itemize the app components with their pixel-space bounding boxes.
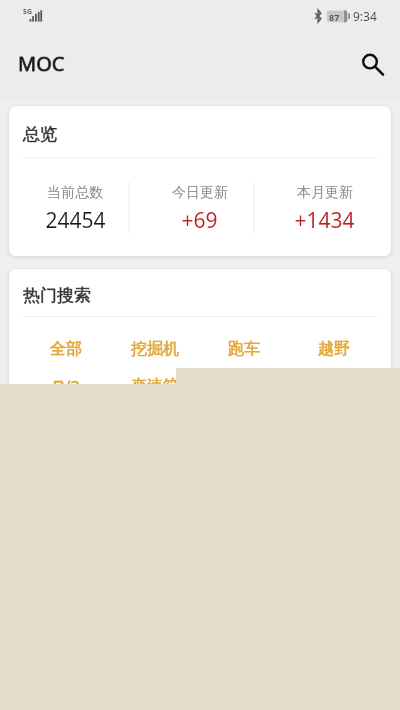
- staticText: 挖掘机: [131, 339, 179, 359]
- staticText: 本月更新: [297, 184, 353, 202]
- staticText: MOC: [18, 50, 65, 77]
- staticText: FV3: [52, 376, 80, 398]
- staticText: MOC: [18, 50, 65, 77]
- staticText: 总览: [23, 124, 57, 145]
- staticText: FV3: [52, 376, 80, 398]
- button[interactable]: 全部: [21, 339, 110, 376]
- button[interactable]: FV3: [21, 376, 110, 413]
- staticText: +69: [181, 206, 218, 235]
- staticText: 24454: [45, 206, 106, 235]
- staticText: 5G: [23, 7, 33, 17]
- button[interactable]: 本月更新: [262, 158, 387, 256]
- staticText: 9:34: [353, 8, 377, 24]
- button[interactable]: 挖掘机: [110, 339, 199, 376]
- staticText: 跑车: [228, 339, 260, 359]
- staticText: 热门搜索: [23, 285, 91, 306]
- button[interactable]: 变速箱: [110, 376, 199, 413]
- staticText: 变速箱: [131, 376, 179, 396]
- button[interactable]: 今日更新: [137, 158, 262, 256]
- staticText: 跑车: [228, 339, 260, 359]
- staticText: 热门搜索: [23, 285, 91, 306]
- staticText: +1434: [294, 206, 355, 235]
- staticText: 全部: [50, 339, 82, 359]
- staticText: 当前总数: [47, 184, 103, 202]
- staticText: 全部: [50, 339, 82, 359]
- button[interactable]: 当前总数: [13, 158, 137, 256]
- staticText: 越野: [318, 339, 350, 359]
- staticText: 挖掘机: [131, 339, 179, 359]
- button[interactable]: Search: [351, 43, 395, 87]
- staticText: 越野: [318, 339, 350, 359]
- button[interactable]: 越野: [289, 339, 379, 376]
- staticText: 87: [329, 11, 340, 23]
- button[interactable]: 跑车: [199, 339, 289, 376]
- staticText: 总览: [23, 124, 57, 145]
- staticText: 今日更新: [172, 184, 228, 202]
- staticText: 变速箱: [131, 376, 179, 396]
